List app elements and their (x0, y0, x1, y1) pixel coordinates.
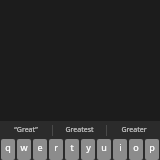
button[interactable]: “Great” (0, 121, 52, 139)
staticText: Greatest (65, 125, 94, 135)
button[interactable]: e (33, 139, 47, 160)
button[interactable]: Greater (107, 121, 160, 139)
staticText: “Great” (14, 125, 38, 135)
button[interactable]: o (129, 139, 143, 160)
staticText: o (133, 141, 139, 153)
staticText: w (20, 141, 28, 153)
button[interactable]: p (145, 139, 159, 160)
button[interactable]: Greatest (53, 121, 106, 139)
staticText: p (149, 141, 155, 153)
staticText: i (119, 141, 122, 153)
button[interactable]: i (113, 139, 127, 160)
button[interactable]: u (97, 139, 111, 160)
staticText: t (70, 141, 74, 153)
button[interactable]: y (81, 139, 95, 160)
button[interactable]: q (1, 139, 15, 160)
staticText: e (37, 141, 43, 153)
staticText: u (101, 141, 107, 153)
button[interactable]: r (49, 139, 63, 160)
staticText: q (5, 141, 11, 153)
button[interactable]: t (65, 139, 79, 160)
staticText: Greater (121, 125, 147, 135)
button[interactable]: w (17, 139, 31, 160)
staticText: y (86, 141, 91, 153)
staticText: r (54, 141, 58, 153)
